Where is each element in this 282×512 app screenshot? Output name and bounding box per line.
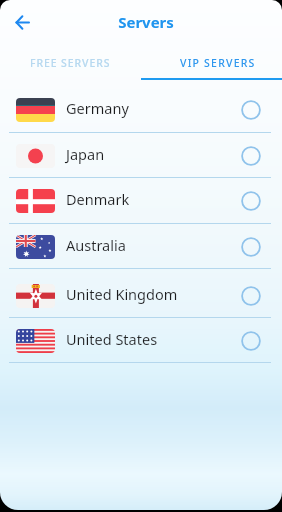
button[interactable]: FREE SERVERS bbox=[0, 48, 141, 77]
button[interactable]: Denmark bbox=[0, 178, 282, 224]
staticText: Servers bbox=[5, 12, 282, 32]
staticText: Japan bbox=[66, 144, 105, 164]
staticText: FREE SERVERS bbox=[30, 56, 111, 70]
button[interactable]: Germany bbox=[0, 87, 282, 133]
staticText: Australia bbox=[66, 235, 126, 255]
button[interactable]: VIP SERVERS bbox=[141, 48, 282, 77]
staticText: United States bbox=[66, 329, 158, 349]
staticText: Germany bbox=[66, 98, 129, 118]
button[interactable]: Australia bbox=[0, 224, 282, 269]
staticText: Denmark bbox=[66, 189, 130, 209]
button[interactable] bbox=[8, 8, 36, 36]
button[interactable]: Japan bbox=[0, 133, 282, 178]
button[interactable]: United Kingdom bbox=[0, 269, 282, 318]
button[interactable]: United States bbox=[0, 318, 282, 363]
staticText: United Kingdom bbox=[66, 284, 178, 304]
staticText: VIP SERVERS bbox=[180, 56, 256, 70]
